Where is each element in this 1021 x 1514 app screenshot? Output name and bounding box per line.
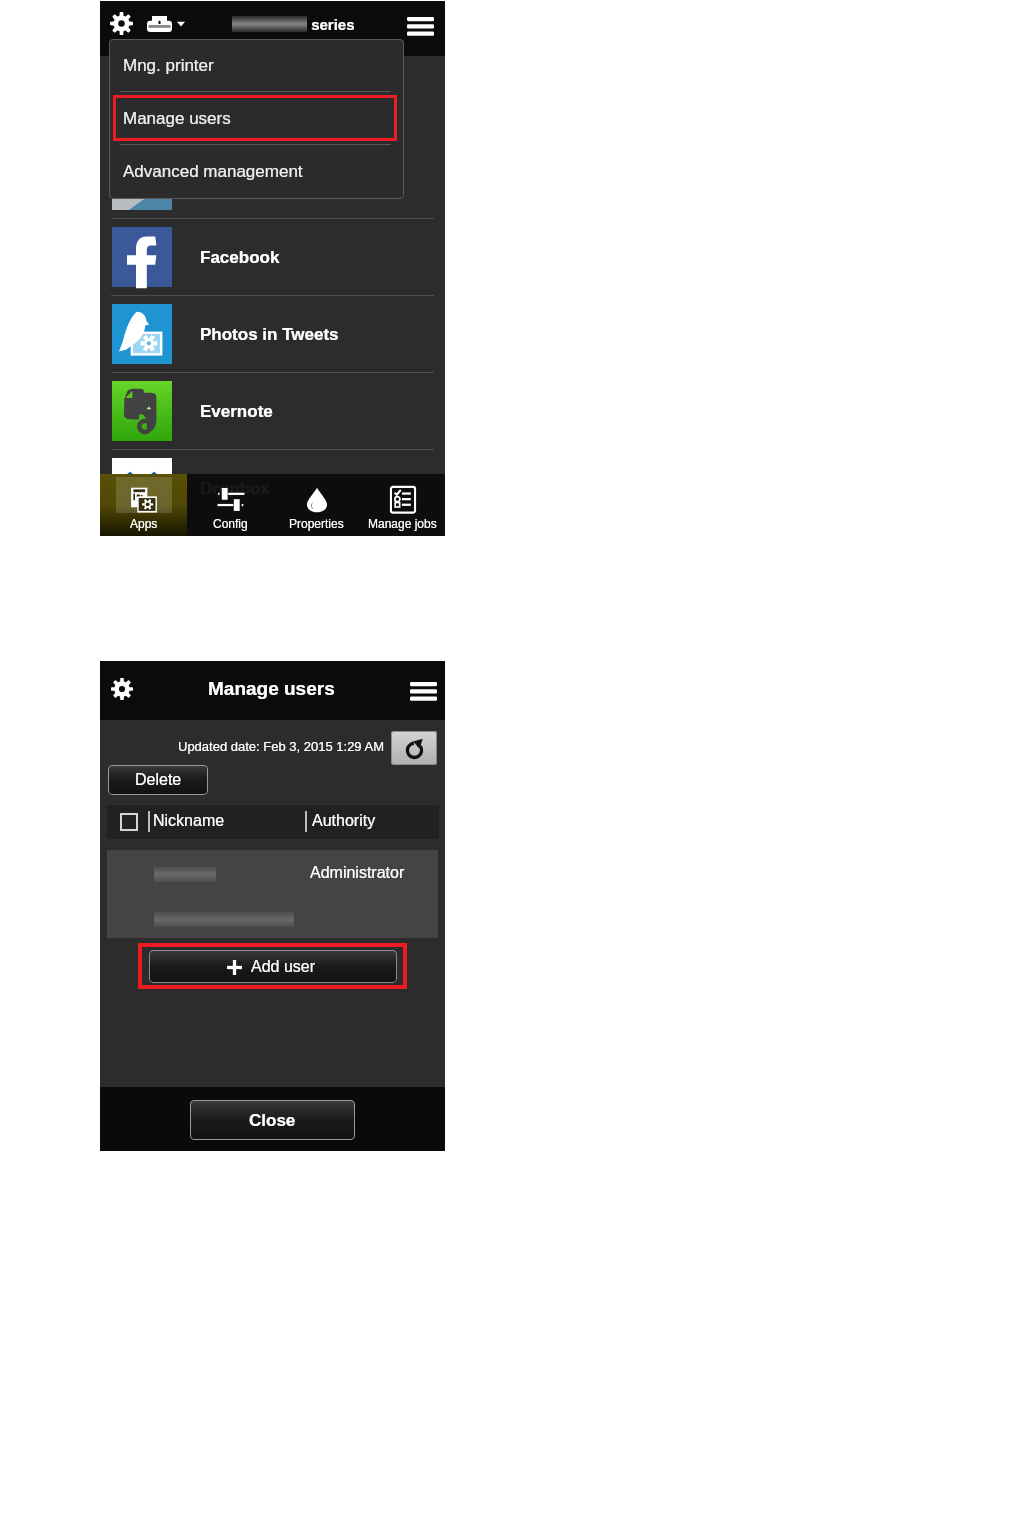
- staticText: Evernote: [200, 402, 273, 421]
- staticText: series: [307, 16, 355, 33]
- button[interactable]: Settings: [108, 10, 135, 37]
- button[interactable]: Administrator: [107, 850, 438, 938]
- button[interactable]: Facebook: [100, 219, 445, 295]
- button[interactable]: Select printer: [147, 11, 185, 36]
- button[interactable]: Evernote: [100, 373, 445, 449]
- staticText: Apps: [130, 517, 158, 530]
- button[interactable]: Settings: [109, 676, 135, 702]
- staticText: Administrator: [310, 864, 405, 882]
- staticText: Dropbox: [200, 479, 270, 498]
- staticText: Nickname: [153, 812, 225, 830]
- staticText: Manage users: [123, 109, 231, 128]
- staticText: Config: [213, 517, 248, 530]
- button[interactable]: Close: [190, 1100, 355, 1140]
- button[interactable]: Config: [187, 474, 273, 536]
- button[interactable]: Mng. printer: [109, 39, 404, 91]
- button[interactable]: Menu: [409, 675, 438, 704]
- staticText: Photos in Tweets: [200, 325, 339, 344]
- button[interactable]: Advanced management: [109, 145, 404, 197]
- button[interactable]: Add user: [149, 950, 397, 983]
- staticText: Manage users: [208, 678, 335, 699]
- button[interactable]: Select all users: [120, 813, 138, 831]
- button[interactable]: Manage jobs: [359, 474, 445, 536]
- button[interactable]: [100, 56, 445, 218]
- button[interactable]: Photos in Tweets: [100, 296, 445, 372]
- staticText: Close: [249, 1111, 296, 1130]
- staticText: Mng. printer: [123, 56, 214, 75]
- staticText: Add user: [251, 958, 316, 976]
- button[interactable]: Apps: [100, 474, 187, 536]
- button[interactable]: Delete: [108, 765, 208, 795]
- staticText: Updated date: Feb 3, 2015 1:29 AM: [178, 739, 384, 754]
- staticText: Facebook: [200, 248, 280, 267]
- button[interactable]: Dropbox: [100, 450, 445, 526]
- button[interactable]: Manage users: [109, 92, 404, 144]
- staticText: Delete: [135, 771, 182, 789]
- button[interactable]: Properties: [273, 474, 359, 536]
- staticText: Authority: [312, 812, 376, 830]
- staticText: Advanced management: [123, 162, 303, 181]
- staticText: Manage jobs: [368, 517, 437, 530]
- staticText: Properties: [289, 517, 344, 530]
- button[interactable]: Menu: [405, 9, 436, 40]
- button[interactable]: Refresh: [391, 731, 437, 765]
